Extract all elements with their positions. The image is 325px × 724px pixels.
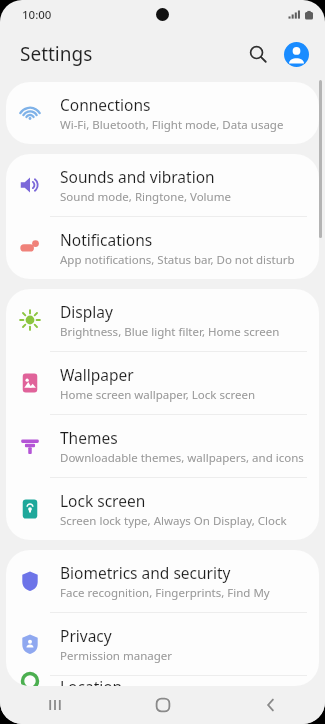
button[interactable]: Biometrics and security [6, 550, 319, 612]
staticText: Face recognition, Fingerprints, Find My … [60, 585, 307, 601]
button[interactable]: Wallpaper [6, 352, 319, 414]
staticText: 10:00 [22, 7, 52, 23]
staticText: Wallpaper [60, 364, 134, 385]
button[interactable]: Display [6, 289, 319, 351]
staticText: Downloadable themes, wallpapers, and ico… [60, 450, 304, 466]
button[interactable]: Recents [0, 686, 109, 724]
staticText: Notifications [60, 229, 153, 250]
staticText: Biometrics and security [60, 562, 231, 583]
button[interactable]: Home [109, 686, 217, 724]
staticText: Connections [60, 94, 151, 115]
staticText: Sound mode, Ringtone, Volume [60, 189, 231, 205]
staticText: Themes [60, 427, 118, 448]
button[interactable]: Themes [6, 415, 319, 477]
button[interactable]: Notifications [6, 217, 319, 279]
button[interactable]: Connections [6, 82, 319, 144]
staticText: Screen lock type, Always On Display, Clo… [60, 513, 307, 529]
staticText: Privacy [60, 625, 112, 646]
staticText: App notifications, Status bar, Do not di… [60, 252, 295, 268]
staticText: Brightness, Blue light filter, Home scre… [60, 324, 280, 340]
button[interactable]: Search [239, 35, 277, 73]
staticText: Settings [20, 41, 93, 67]
button[interactable]: Back [217, 686, 325, 724]
staticText: Permission manager [60, 648, 173, 664]
staticText: Wi-Fi, Bluetooth, Flight mode, Data usag… [60, 117, 284, 133]
button[interactable]: Sounds and vibration [6, 154, 319, 216]
staticText: Display [60, 301, 113, 322]
staticText: Sounds and vibration [60, 166, 215, 187]
staticText: Lock screen [60, 490, 146, 511]
button[interactable]: Privacy [6, 613, 319, 675]
staticText: Home screen wallpaper, Lock screen wallp… [60, 387, 307, 403]
button[interactable]: Account [277, 35, 315, 73]
staticText: Location [60, 676, 123, 686]
button[interactable]: Location [6, 676, 319, 686]
button[interactable]: Lock screen [6, 478, 319, 540]
